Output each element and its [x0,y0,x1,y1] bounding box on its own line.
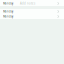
staticText: Monday [3,2,13,5]
staticText: Monday [3,10,13,13]
staticText: Monday [3,15,13,18]
button[interactable]: Monday [0,9,64,14]
staticText: Add notes [20,2,35,5]
button[interactable]: Monday [0,14,64,19]
button[interactable]: Monday [0,0,64,6]
